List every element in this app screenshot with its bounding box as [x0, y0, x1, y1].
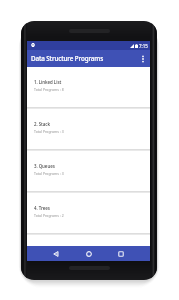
staticText: Total Programs : 3 — [34, 171, 64, 176]
staticText: Total Programs : 8 — [34, 87, 64, 92]
button[interactable]: Home — [79, 246, 99, 261]
staticText: 4. Trees — [34, 205, 50, 211]
staticText: 7:15 — [139, 43, 148, 49]
button[interactable]: Recent apps — [111, 246, 131, 261]
button[interactable]: Back — [46, 246, 66, 261]
button[interactable]: 1. Linked List — [27, 67, 150, 109]
staticText: 1. Linked List — [34, 79, 62, 85]
staticText: 2. Stack — [34, 121, 51, 127]
staticText: Total Programs : 2 — [34, 213, 64, 218]
staticText: 3. Queues — [34, 163, 55, 169]
button[interactable]: 3. Queues — [27, 151, 150, 193]
staticText: Total Programs : 3 — [34, 129, 64, 134]
button[interactable]: 2. Stack — [27, 109, 150, 151]
staticText: Data Structure Programs — [31, 54, 104, 63]
button[interactable]: 4. Trees — [27, 193, 150, 235]
button[interactable]: More options — [136, 50, 150, 67]
